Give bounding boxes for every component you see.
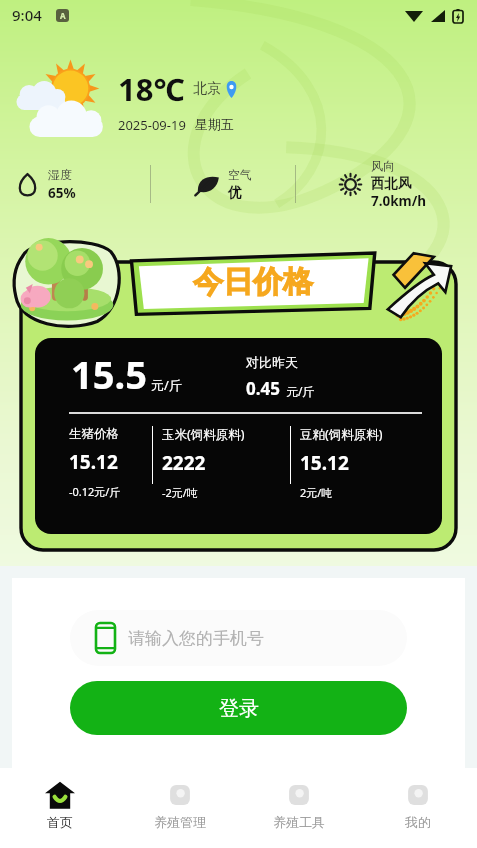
staticText: 65% (48, 184, 76, 202)
staticText: 玉米(饲料原料) (162, 426, 245, 443)
button[interactable]: 登录 (70, 681, 407, 735)
other: Location (225, 81, 238, 98)
staticText: -0.12元/斤 (69, 484, 121, 499)
staticText: 2222 (162, 450, 206, 476)
staticText: 首页 (47, 814, 73, 830)
button[interactable]: 养殖管理 (120, 768, 239, 848)
staticText: 养殖管理 (154, 814, 206, 830)
staticText: 北京 (193, 80, 221, 98)
button[interactable]: 我的 (358, 768, 477, 848)
staticText: 18℃ (118, 68, 185, 110)
staticText: 元/斤 (151, 376, 182, 394)
button[interactable]: 请输入您的手机号 (70, 610, 407, 666)
staticText: 优 (228, 184, 242, 201)
staticText: -2元/吨 (162, 485, 198, 500)
staticText: 风向 (371, 158, 395, 173)
staticText: 湿度 (48, 167, 72, 182)
staticText: 2025-09-19 (118, 116, 186, 134)
staticText: 星期五 (195, 116, 234, 132)
button[interactable]: 首页 (0, 768, 120, 848)
staticText: 元/斤 (286, 383, 315, 399)
staticText: 西北风 (371, 175, 412, 192)
staticText: 豆粕(饲料原料) (300, 426, 383, 443)
button[interactable]: 养殖工具 (239, 768, 358, 848)
staticText: 我的 (405, 814, 431, 830)
staticText: A (60, 10, 66, 21)
staticText: 7.0km/h (371, 192, 427, 210)
staticText: 请输入您的手机号 (128, 628, 264, 649)
staticText: 空气 (228, 167, 252, 182)
staticText: 2元/吨 (300, 485, 333, 500)
staticText: 生猪价格 (69, 426, 119, 442)
staticText: 登录 (219, 696, 259, 721)
staticText: 0.45 (246, 377, 280, 400)
staticText: 9:04 (12, 5, 42, 25)
staticText: 今日价格 (193, 263, 313, 301)
staticText: 15.5 (71, 348, 147, 400)
staticText: 15.12 (300, 450, 349, 476)
staticText: 对比昨天 (246, 354, 298, 370)
staticText: 养殖工具 (273, 814, 325, 830)
staticText: 15.12 (69, 449, 118, 475)
